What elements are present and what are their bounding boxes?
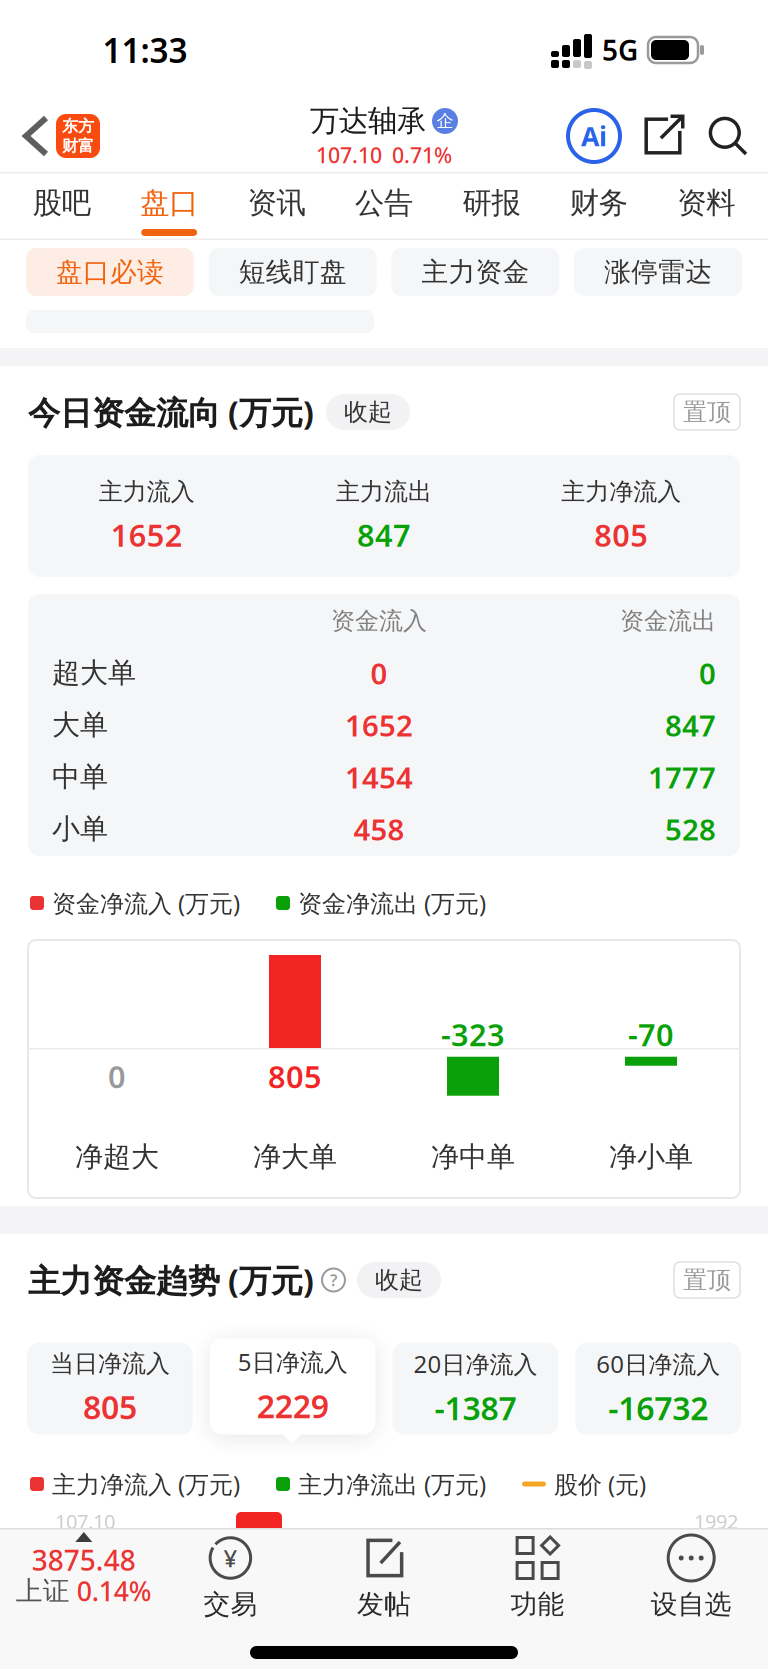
staticText: 研报 <box>462 185 520 221</box>
staticText: 净大单 <box>253 1140 337 1174</box>
button[interactable]: 置顶 <box>674 1262 740 1298</box>
staticText: 1454 <box>345 757 413 796</box>
staticText: 设自选 <box>651 1588 732 1621</box>
staticText: 主力流出 <box>336 477 432 506</box>
staticText: 短线盯盘 <box>239 256 347 288</box>
staticText: 107.10 <box>316 141 382 169</box>
staticText: 收起 <box>344 397 392 427</box>
staticText: 股吧 <box>33 185 91 221</box>
button[interactable]: 资料 <box>653 172 760 240</box>
staticText: 0 <box>370 653 387 692</box>
button[interactable]: 功能 <box>461 1532 614 1621</box>
staticText: 60日净流入 <box>596 1348 720 1380</box>
staticText: ? <box>330 1269 337 1291</box>
staticText: 11:33 <box>102 28 187 72</box>
button[interactable]: Share <box>620 115 684 157</box>
button[interactable]: 盘口 <box>115 172 223 240</box>
staticText: 0.14% <box>77 1573 152 1609</box>
staticText: 小单 <box>52 812 108 846</box>
button[interactable]: Search <box>684 116 768 156</box>
staticText: 发帖 <box>357 1588 411 1621</box>
staticText: 企 <box>436 110 453 132</box>
staticText: 2229 <box>257 1385 329 1427</box>
staticText: -1387 <box>434 1387 516 1429</box>
button[interactable]: 主力资金 <box>391 248 559 296</box>
button[interactable]: 财务 <box>545 172 652 240</box>
button[interactable]: 收起 <box>357 1262 441 1298</box>
button[interactable]: 盘口必读 <box>26 248 194 296</box>
staticText: Ai <box>581 118 607 154</box>
staticText: 1777 <box>648 757 716 796</box>
staticText: 中单 <box>52 760 108 794</box>
button[interactable]: 涨停雷达 <box>574 248 742 296</box>
button[interactable]: 研报 <box>438 172 545 240</box>
staticText: 5日净流入 <box>238 1346 348 1378</box>
staticText: 3875.48 <box>32 1541 136 1579</box>
staticText: 1992 <box>694 1508 738 1535</box>
button[interactable]: ¥ <box>154 1532 307 1621</box>
staticText: 置顶 <box>683 1265 731 1295</box>
staticText: 财富 <box>62 136 94 156</box>
button[interactable]: 短线盯盘 <box>209 248 377 296</box>
button[interactable]: 发帖 <box>307 1532 461 1621</box>
staticText: 功能 <box>511 1588 565 1621</box>
staticText: 5G <box>602 31 638 69</box>
staticText: 大单 <box>52 708 108 742</box>
button[interactable]: 上证指数 <box>0 1532 154 1606</box>
staticText: 万达轴承 <box>310 103 426 139</box>
staticText: 股价 (元) <box>554 1468 646 1500</box>
button[interactable]: 60日净流入 <box>575 1342 741 1434</box>
button[interactable]: 设自选 <box>614 1532 768 1621</box>
staticText: ¥ <box>223 1542 237 1574</box>
staticText: 20日净流入 <box>413 1348 537 1380</box>
staticText: 528 <box>665 809 716 848</box>
button[interactable]: 资讯 <box>223 172 330 240</box>
button[interactable]: 股吧 <box>8 172 115 240</box>
staticText: 今日资金流向 (万元) <box>28 391 314 433</box>
staticText: -323 <box>441 1014 505 1055</box>
button[interactable]: 收起 <box>326 394 410 430</box>
staticText: -70 <box>628 1014 674 1055</box>
button[interactable]: AI 助手 <box>568 110 620 162</box>
staticText: 主力流入 <box>99 477 195 506</box>
staticText: 当日净流入 <box>50 1349 170 1378</box>
button[interactable]: 置顶 <box>674 394 740 430</box>
button[interactable]: 东方财富 <box>56 114 100 158</box>
staticText: 0 <box>108 1056 126 1097</box>
staticText: 资金净流出 (万元) <box>298 887 486 919</box>
staticText: 0 <box>699 653 716 692</box>
staticText: 交易 <box>203 1588 257 1621</box>
staticText: -16732 <box>608 1387 708 1429</box>
staticText: 主力资金趋势 (万元) <box>28 1259 314 1301</box>
staticText: 收起 <box>375 1265 423 1295</box>
staticText: 盘口必读 <box>56 256 164 288</box>
staticText: 上证 <box>16 1575 70 1607</box>
staticText: 主力净流入 (万元) <box>52 1468 240 1500</box>
staticText: 1652 <box>111 514 183 555</box>
staticText: 107.10 <box>55 1508 115 1535</box>
staticText: 主力净流出 (万元) <box>298 1468 486 1500</box>
staticText: 东方 <box>62 116 94 136</box>
staticText: 主力资金 <box>421 256 529 288</box>
staticText: 资讯 <box>248 185 306 221</box>
staticText: 847 <box>665 705 716 744</box>
staticText: 1652 <box>345 705 413 744</box>
button[interactable]: 5日净流入 <box>210 1338 376 1434</box>
staticText: 805 <box>594 514 648 555</box>
staticText: 0.71% <box>392 141 452 169</box>
staticText: 财务 <box>570 185 628 221</box>
staticText: 净超大 <box>75 1140 159 1174</box>
staticText: 805 <box>83 1385 137 1428</box>
staticText: 资金净流入 (万元) <box>52 887 240 919</box>
staticText: 超大单 <box>52 656 136 690</box>
staticText: 847 <box>357 514 411 555</box>
button[interactable]: Back <box>0 118 56 154</box>
button[interactable]: 20日净流入 <box>392 1342 558 1434</box>
staticText: 资金流入 <box>331 606 427 636</box>
button[interactable]: 公告 <box>330 172 438 240</box>
staticText: 净中单 <box>431 1140 515 1174</box>
staticText: 净小单 <box>609 1140 693 1174</box>
staticText: 盘口 <box>140 185 198 221</box>
button[interactable]: 当日净流入 <box>27 1342 193 1434</box>
staticText: 主力净流入 <box>561 477 681 506</box>
